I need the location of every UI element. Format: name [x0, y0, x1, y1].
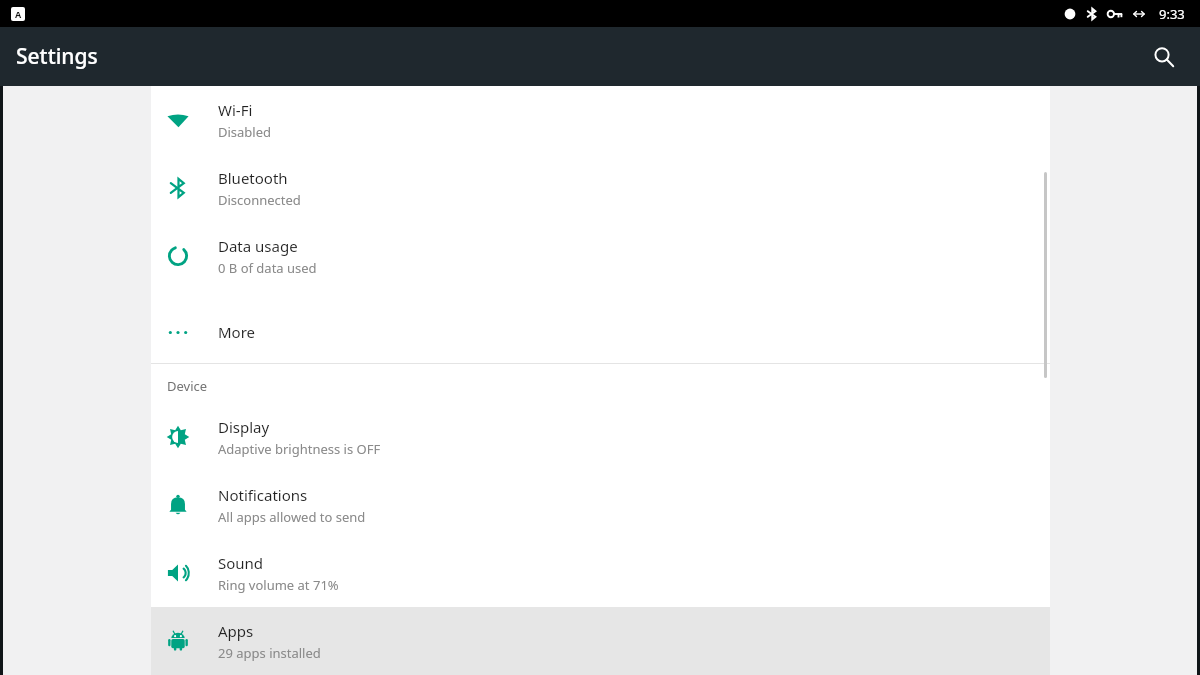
button[interactable]: Search: [1142, 35, 1186, 79]
button[interactable]: Notifications: [151, 471, 1050, 539]
staticText: Disabled: [218, 123, 272, 141]
staticText: A: [15, 8, 22, 20]
staticText: Bluetooth: [218, 168, 288, 188]
staticText: 0 B of data used: [218, 259, 317, 277]
button[interactable]: Bluetooth: [151, 154, 1050, 222]
staticText: Settings: [16, 42, 98, 71]
staticText: Wi-Fi: [218, 100, 253, 120]
staticText: Sound: [218, 553, 264, 573]
button[interactable]: Display: [151, 403, 1050, 471]
staticText: Device: [167, 377, 208, 395]
button[interactable]: Sound: [151, 539, 1050, 607]
staticText: Ring volume at 71%: [218, 576, 339, 594]
staticText: Display: [218, 417, 270, 437]
staticText: 29 apps installed: [218, 644, 321, 662]
staticText: 9:33: [1159, 5, 1185, 23]
staticText: More: [218, 322, 256, 342]
staticText: All apps allowed to send: [218, 508, 366, 526]
button[interactable]: Wi-Fi: [151, 86, 1050, 154]
button[interactable]: Data usage: [151, 222, 1050, 290]
staticText: Disconnected: [218, 191, 301, 209]
staticText: Apps: [218, 621, 254, 641]
button[interactable]: More: [151, 298, 1050, 366]
staticText: Data usage: [218, 236, 298, 256]
staticText: Notifications: [218, 485, 308, 505]
button[interactable]: Apps: [151, 607, 1050, 675]
staticText: Adaptive brightness is OFF: [218, 440, 381, 458]
